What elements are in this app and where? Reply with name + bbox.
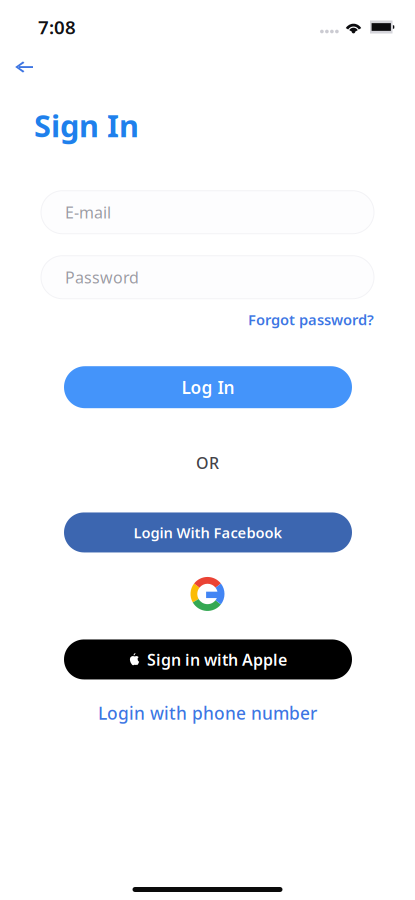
staticText: Log In xyxy=(181,376,234,399)
staticText: Login With Facebook xyxy=(133,523,282,542)
button[interactable]: Login with phone number xyxy=(98,701,317,724)
staticText: Sign in with Apple xyxy=(147,649,287,670)
staticText: E-mail xyxy=(65,202,111,223)
staticText: Login with phone number xyxy=(98,701,317,724)
button[interactable]: Back xyxy=(0,49,56,84)
button[interactable]: Sign in with Apple xyxy=(64,639,352,679)
staticText: 7:08 xyxy=(38,15,76,39)
button[interactable]: Forgot password? xyxy=(248,310,374,329)
staticText: Forgot password? xyxy=(248,310,374,329)
button[interactable]: Login With Facebook xyxy=(64,512,352,552)
staticText: Sign In xyxy=(34,105,139,146)
staticText: Password xyxy=(65,267,139,288)
staticText: OR xyxy=(196,452,219,473)
button[interactable]: Sign in with Google xyxy=(190,576,224,611)
button[interactable]: Log In xyxy=(64,366,352,408)
